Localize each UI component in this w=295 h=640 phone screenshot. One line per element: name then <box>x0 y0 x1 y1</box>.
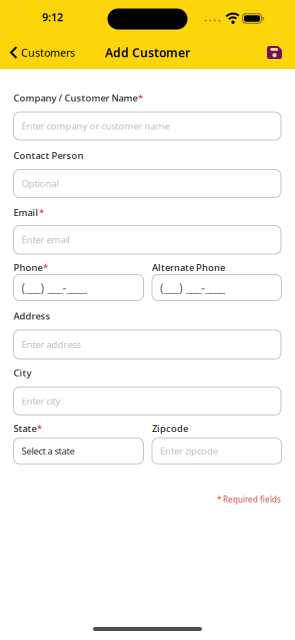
staticText: Address <box>13 310 50 322</box>
staticText: * <box>138 92 143 104</box>
staticText: (___) ___-____ <box>160 279 225 295</box>
staticText: Contact Person <box>13 149 83 162</box>
button[interactable]: Optional <box>13 169 281 197</box>
staticText: Enter address <box>21 338 80 351</box>
staticText: Optional <box>21 177 58 190</box>
button[interactable]: Enter address <box>13 330 281 359</box>
button[interactable]: Back <box>10 41 75 64</box>
staticText: 9:12 <box>42 10 63 24</box>
staticText: Email <box>13 206 38 219</box>
staticText: * <box>43 261 48 274</box>
staticText: * <box>37 422 42 435</box>
button[interactable]: (___) ___-____ <box>13 274 143 300</box>
staticText: City <box>13 367 31 379</box>
staticText: Enter company or customer name <box>21 120 169 132</box>
button[interactable]: (___) ___-____ <box>152 274 281 300</box>
staticText: Select a state <box>21 445 74 457</box>
staticText: Zipcode <box>152 422 188 435</box>
button[interactable]: Select a state <box>13 438 143 464</box>
button[interactable]: Enter city <box>13 387 281 415</box>
button[interactable]: Enter email <box>13 225 281 254</box>
staticText: Phone <box>13 261 42 274</box>
button[interactable]: Save <box>263 42 286 63</box>
staticText: * <box>39 206 44 219</box>
staticText: Required fields <box>223 494 281 505</box>
staticText: * <box>217 494 221 505</box>
staticText: State <box>13 422 36 435</box>
staticText: Enter email <box>21 234 69 246</box>
staticText: Customers <box>21 45 75 60</box>
staticText: Enter city <box>21 395 60 407</box>
staticText: Alternate Phone <box>152 261 225 274</box>
staticText: Company / Customer Name <box>13 92 137 104</box>
staticText: (___) ___-____ <box>21 279 86 295</box>
staticText: Add Customer <box>105 44 190 60</box>
button[interactable]: Enter zipcode <box>152 438 281 464</box>
staticText: Enter zipcode <box>160 445 218 457</box>
button[interactable]: Enter company or customer name <box>13 112 281 140</box>
